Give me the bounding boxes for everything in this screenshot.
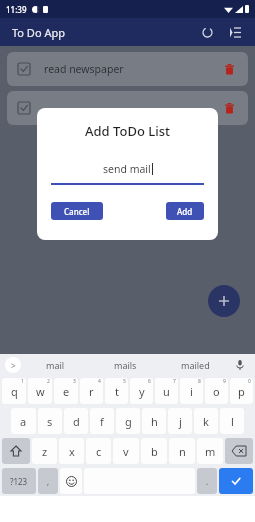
button[interactable]: w (28, 378, 52, 404)
button[interactable]: y (130, 378, 153, 404)
button[interactable]: Delete (221, 61, 237, 77)
button[interactable]: Delete (7, 91, 248, 125)
button[interactable]: Refresh (197, 22, 217, 42)
staticText: 2 (47, 378, 50, 385)
staticText: mails (114, 359, 137, 371)
button[interactable]: m (197, 438, 223, 464)
staticText: Cancel (64, 206, 90, 217)
button[interactable]: n (169, 438, 195, 464)
staticText: send mail (103, 162, 151, 176)
button[interactable]: Add (166, 202, 204, 220)
staticText: g (125, 414, 132, 429)
staticText: d (73, 414, 80, 429)
button[interactable]: Done (219, 468, 253, 494)
button[interactable]: b (141, 438, 167, 464)
staticText: p (238, 384, 245, 399)
staticText: q (11, 384, 18, 399)
button[interactable]: , (38, 468, 58, 494)
button[interactable]: mailed (160, 354, 230, 376)
staticText: h (151, 414, 158, 429)
button[interactable]: d (64, 408, 88, 434)
button[interactable]: a (11, 408, 36, 434)
button[interactable]: h (142, 408, 166, 434)
button[interactable]: Emoji (60, 468, 82, 494)
button[interactable]: Backspace (225, 438, 253, 464)
staticText: v (123, 444, 129, 459)
button[interactable]: p (230, 378, 253, 404)
button[interactable]: mails (90, 354, 160, 376)
staticText: i (190, 384, 193, 399)
button[interactable]: Sort list (225, 22, 245, 42)
button[interactable]: Delete (221, 100, 237, 116)
button[interactable]: Voice input (230, 354, 250, 376)
button[interactable]: Shift (2, 438, 30, 464)
button[interactable]: o (205, 378, 228, 404)
button[interactable]: x (59, 438, 84, 464)
button[interactable]: Add todo (208, 285, 240, 317)
button[interactable]: z (32, 438, 57, 464)
staticText: k (203, 414, 209, 429)
staticText: 3 (73, 378, 76, 385)
staticText: Add ToDo List (37, 122, 218, 140)
staticText: 0 (248, 378, 251, 385)
staticText: read newspaper (44, 62, 124, 76)
staticText: x (69, 444, 75, 459)
staticText: y (139, 384, 145, 399)
staticText: w (36, 384, 45, 399)
staticText: ?123 (10, 476, 28, 487)
staticText: . (206, 476, 209, 487)
staticText: j (179, 414, 182, 429)
staticText: Add (177, 206, 193, 217)
staticText: c (96, 444, 102, 459)
button[interactable]: Cancel (51, 202, 103, 220)
staticText: , (47, 476, 50, 487)
button[interactable]: s (38, 408, 62, 434)
button[interactable]: r (80, 378, 103, 404)
button[interactable]: q (2, 378, 26, 404)
staticText: a (20, 414, 27, 429)
staticText: 6 (148, 378, 151, 385)
button[interactable]: read newspaper (7, 52, 248, 86)
staticText: f (100, 414, 104, 429)
staticText: z (42, 444, 48, 459)
staticText: 7 (173, 378, 176, 385)
button[interactable]: f (90, 408, 114, 434)
staticText: t (115, 384, 119, 399)
button[interactable]: l (220, 408, 244, 434)
button[interactable]: More suggestions (5, 357, 21, 373)
button[interactable]: ?123 (2, 468, 36, 494)
staticText: r (89, 384, 94, 399)
staticText: o (213, 384, 220, 399)
staticText: 5 (123, 378, 126, 385)
button[interactable]: e (54, 378, 78, 404)
staticText: 4 (98, 378, 101, 385)
staticText: To Do App (12, 25, 65, 40)
staticText: s (47, 414, 53, 429)
staticText: u (163, 384, 170, 399)
staticText: n (179, 444, 186, 459)
staticText: b (151, 444, 158, 459)
button[interactable]: g (116, 408, 140, 434)
staticText: mail (46, 359, 65, 371)
staticText: e (63, 384, 70, 399)
staticText: 11:39 (6, 4, 27, 15)
staticText: m (205, 444, 216, 459)
button[interactable]: t (105, 378, 128, 404)
button[interactable]: v (113, 438, 139, 464)
button[interactable]: i (180, 378, 203, 404)
staticText: mailed (181, 359, 210, 371)
button[interactable]: k (194, 408, 218, 434)
button[interactable]: mail (21, 354, 90, 376)
staticText: 8 (198, 378, 201, 385)
button[interactable]: j (168, 408, 192, 434)
staticText: 1 (21, 378, 24, 385)
button[interactable]: c (86, 438, 111, 464)
staticText: l (231, 414, 234, 429)
staticText: > (11, 360, 16, 371)
staticText: 9 (223, 378, 226, 385)
button[interactable]: . (197, 468, 217, 494)
button[interactable]: u (155, 378, 178, 404)
